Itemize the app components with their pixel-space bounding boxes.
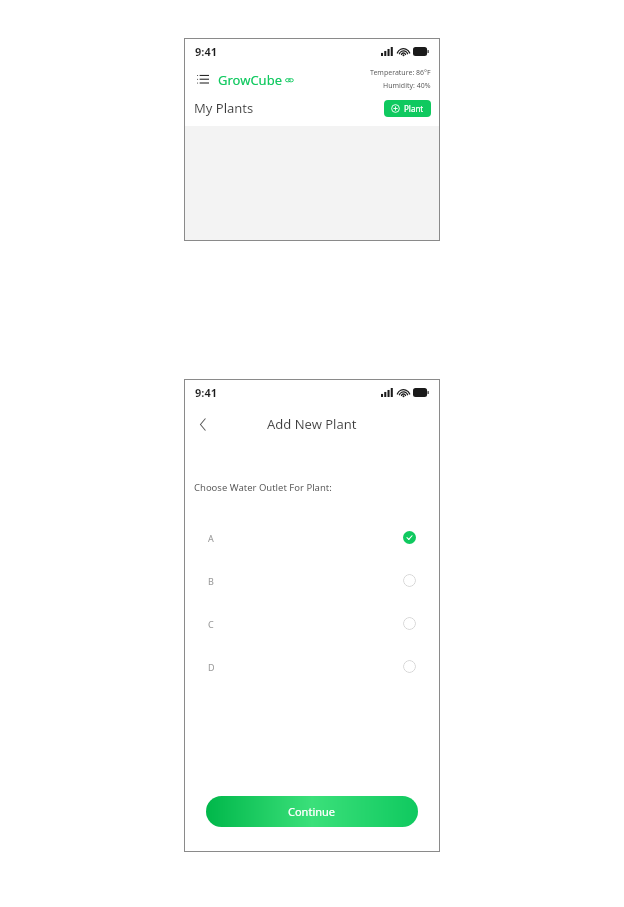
button[interactable]: Menu — [194, 71, 212, 89]
button[interactable]: B — [184, 559, 440, 602]
button[interactable]: Continue — [206, 796, 418, 827]
staticText: Temperature: 86°F — [370, 68, 431, 78]
button[interactable]: C — [184, 602, 440, 645]
staticText: B — [208, 575, 214, 587]
staticText: 9:41 — [195, 385, 217, 400]
button[interactable]: GrowCube — [218, 71, 294, 89]
staticText: A — [208, 532, 214, 544]
button[interactable]: Plant — [384, 100, 431, 117]
staticText: Choose Water Outlet For Plant: — [194, 481, 332, 494]
staticText: D — [208, 661, 215, 673]
staticText: GrowCube — [218, 71, 282, 89]
staticText: Humidity: 40% — [383, 81, 431, 91]
button[interactable]: A — [184, 516, 440, 559]
staticText: 9:41 — [195, 44, 217, 59]
staticText: Plant — [404, 103, 424, 114]
staticText: Continue — [288, 804, 336, 819]
staticText: C — [208, 618, 214, 630]
button[interactable]: Back — [192, 413, 214, 435]
staticText: My Plants — [194, 99, 254, 117]
staticText: Add New Plant — [267, 415, 357, 433]
button[interactable]: D — [184, 645, 440, 688]
